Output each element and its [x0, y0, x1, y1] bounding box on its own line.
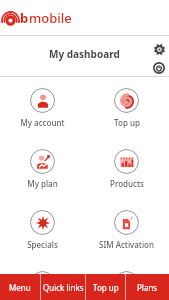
- button[interactable]: Power off: [153, 62, 165, 74]
- button[interactable]: Top up: [84, 76, 169, 137]
- button[interactable]: Plans: [126, 274, 169, 300]
- staticText: Plans: [137, 282, 158, 293]
- button[interactable]: SIM Activation: [84, 198, 169, 259]
- staticText: My dashboard: [49, 47, 120, 61]
- button[interactable]: Settings: [154, 44, 165, 55]
- button[interactable]: Quick links: [41, 274, 85, 300]
- button[interactable]: [84, 259, 169, 299]
- staticText: SIM Activation: [99, 239, 154, 250]
- staticText: My plan: [27, 178, 58, 189]
- staticText: Menu: [9, 282, 31, 293]
- button[interactable]: Top up: [86, 274, 125, 300]
- button[interactable]: My plan: [0, 137, 84, 198]
- button[interactable]: [0, 259, 84, 299]
- staticText: Top up: [114, 117, 140, 128]
- button[interactable]: Specials: [0, 198, 84, 259]
- staticText: Top up: [93, 282, 119, 293]
- staticText: Quick links: [43, 282, 84, 293]
- staticText: mobile: [29, 9, 72, 27]
- button[interactable]: Menu: [0, 274, 40, 300]
- staticText: My account: [20, 117, 65, 128]
- staticText: b: [20, 9, 29, 27]
- staticText: Products: [110, 178, 144, 189]
- button[interactable]: My account: [0, 76, 84, 137]
- staticText: Specials: [27, 239, 58, 250]
- button[interactable]: Products: [84, 137, 169, 198]
